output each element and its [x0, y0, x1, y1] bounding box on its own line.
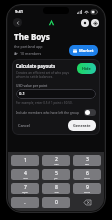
staticText: Include members who have left the group	[16, 111, 82, 115]
button[interactable]: 1	[11, 155, 39, 166]
staticText: 0	[55, 199, 58, 206]
staticText: 8	[55, 184, 58, 191]
button[interactable]: Settings	[91, 19, 99, 27]
button[interactable]: 5	[42, 169, 70, 180]
staticText: .	[24, 199, 26, 206]
staticText: DEF	[85, 163, 89, 166]
button[interactable]: 2	[42, 155, 70, 166]
staticText: 9:41	[15, 9, 23, 14]
staticText: 5	[55, 170, 58, 177]
staticText: WXYZ	[84, 191, 90, 194]
staticText: 2	[55, 156, 58, 163]
staticText: 6	[86, 170, 89, 177]
staticText: For example, enter 0.5 if 1 point = $0.5…	[16, 101, 73, 105]
button[interactable]: Include members who have left the group	[16, 109, 96, 116]
button[interactable]: Market	[69, 45, 98, 56]
staticText: ABC	[54, 163, 59, 166]
staticText: Hide	[82, 66, 91, 71]
button[interactable]: Backspace	[73, 197, 101, 208]
button[interactable]: Back	[13, 18, 22, 27]
staticText: 1	[24, 157, 27, 164]
staticText: Market	[79, 48, 94, 53]
staticText: TUV	[54, 191, 59, 194]
staticText: 10 members	[20, 51, 42, 56]
staticText: 0.1	[19, 91, 25, 97]
button[interactable]: 6	[73, 169, 101, 180]
button[interactable]: 0.1	[16, 89, 96, 99]
button[interactable]: 7	[11, 183, 39, 194]
staticText: GHI	[23, 177, 28, 180]
staticText: Cancel	[18, 123, 31, 128]
staticText: JKL	[54, 177, 58, 180]
button[interactable]: Cancel	[16, 121, 33, 130]
button[interactable]: Notifications	[81, 19, 89, 27]
staticText: 7	[24, 184, 27, 191]
staticText: Generate	[73, 123, 91, 128]
staticText: 3	[86, 156, 89, 163]
staticText: 9	[86, 184, 89, 191]
staticText: PQRS	[22, 191, 28, 194]
button[interactable]: 8	[42, 183, 70, 194]
staticText: the portland app	[14, 44, 43, 49]
button[interactable]: 3	[73, 155, 101, 166]
staticText: Calculate payouts	[16, 63, 56, 69]
button[interactable]: Hide	[77, 63, 96, 74]
staticText: The Boys	[14, 31, 50, 42]
staticText: Creates an efficient set of who pays who…	[16, 71, 74, 79]
button[interactable]: 9	[73, 183, 101, 194]
staticText: USD value per point	[16, 83, 48, 87]
button[interactable]: .	[11, 197, 39, 208]
button[interactable]: 4	[11, 169, 39, 180]
button[interactable]: 0	[42, 197, 70, 208]
staticText: 4	[24, 170, 27, 177]
staticText: MNO	[84, 177, 90, 180]
button[interactable]: Generate	[68, 120, 96, 131]
